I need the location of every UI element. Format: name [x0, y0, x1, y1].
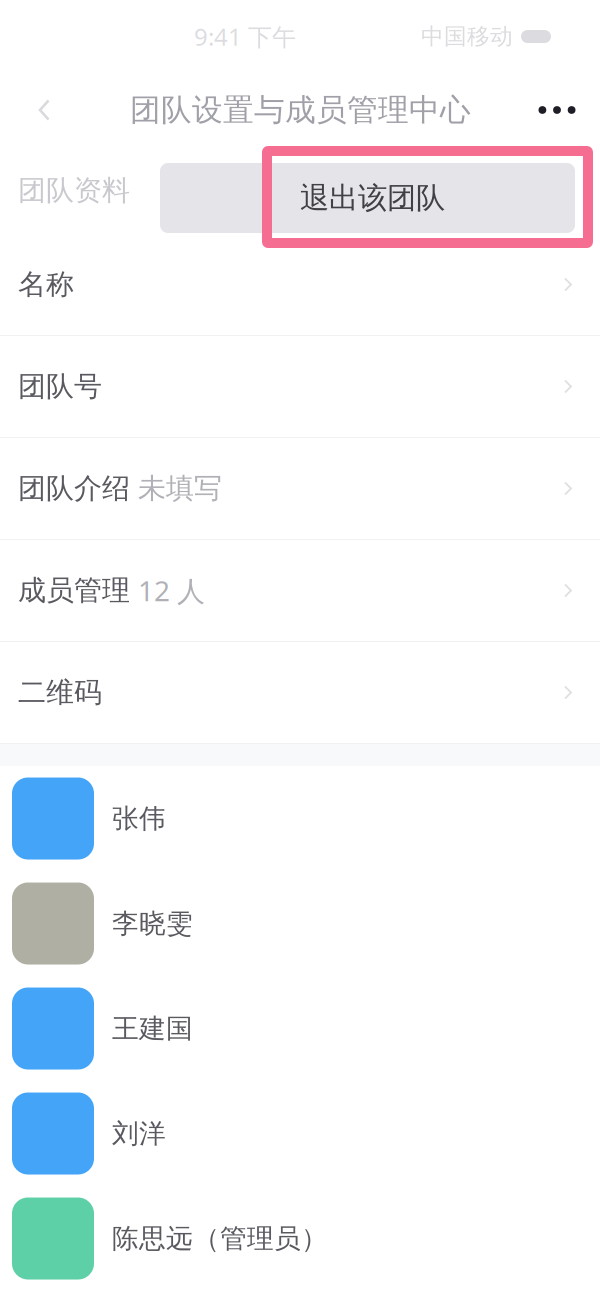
- button[interactable]: Back: [0, 73, 70, 147]
- button[interactable]: 团队介绍: [0, 438, 600, 540]
- staticText: 中国移动: [421, 23, 513, 50]
- staticText: 退出该团队: [300, 180, 445, 216]
- staticText: 9:41 下午: [194, 21, 296, 52]
- button[interactable]: More options: [514, 73, 600, 147]
- button[interactable]: 王建国: [0, 976, 600, 1081]
- button[interactable]: 成员管理: [0, 540, 600, 642]
- button[interactable]: 名称: [0, 234, 600, 336]
- staticText: 陈思远（管理员）: [112, 1222, 328, 1255]
- button[interactable]: 刘洋: [0, 1081, 600, 1186]
- button[interactable]: 陈思远（管理员）: [0, 1186, 600, 1291]
- staticText: 团队资料: [18, 173, 130, 208]
- button[interactable]: 李晓雯: [0, 871, 600, 976]
- staticText: 李晓雯: [112, 907, 193, 940]
- staticText: 团队设置与成员管理中心: [130, 91, 471, 129]
- staticText: 成员管理: [18, 573, 130, 608]
- staticText: 团队号: [18, 369, 102, 404]
- staticText: 王建国: [112, 1012, 193, 1045]
- button[interactable]: 张伟: [0, 766, 600, 871]
- staticText: 未填写: [138, 471, 222, 506]
- button[interactable]: 团队号: [0, 336, 600, 438]
- button[interactable]: 退出该团队: [160, 163, 575, 233]
- staticText: 团队介绍: [18, 471, 130, 506]
- staticText: 张伟: [112, 802, 166, 835]
- staticText: 12 人: [138, 572, 205, 609]
- staticText: 名称: [18, 267, 74, 302]
- staticText: 二维码: [18, 675, 102, 710]
- staticText: 刘洋: [112, 1117, 166, 1150]
- button[interactable]: 二维码: [0, 642, 600, 744]
